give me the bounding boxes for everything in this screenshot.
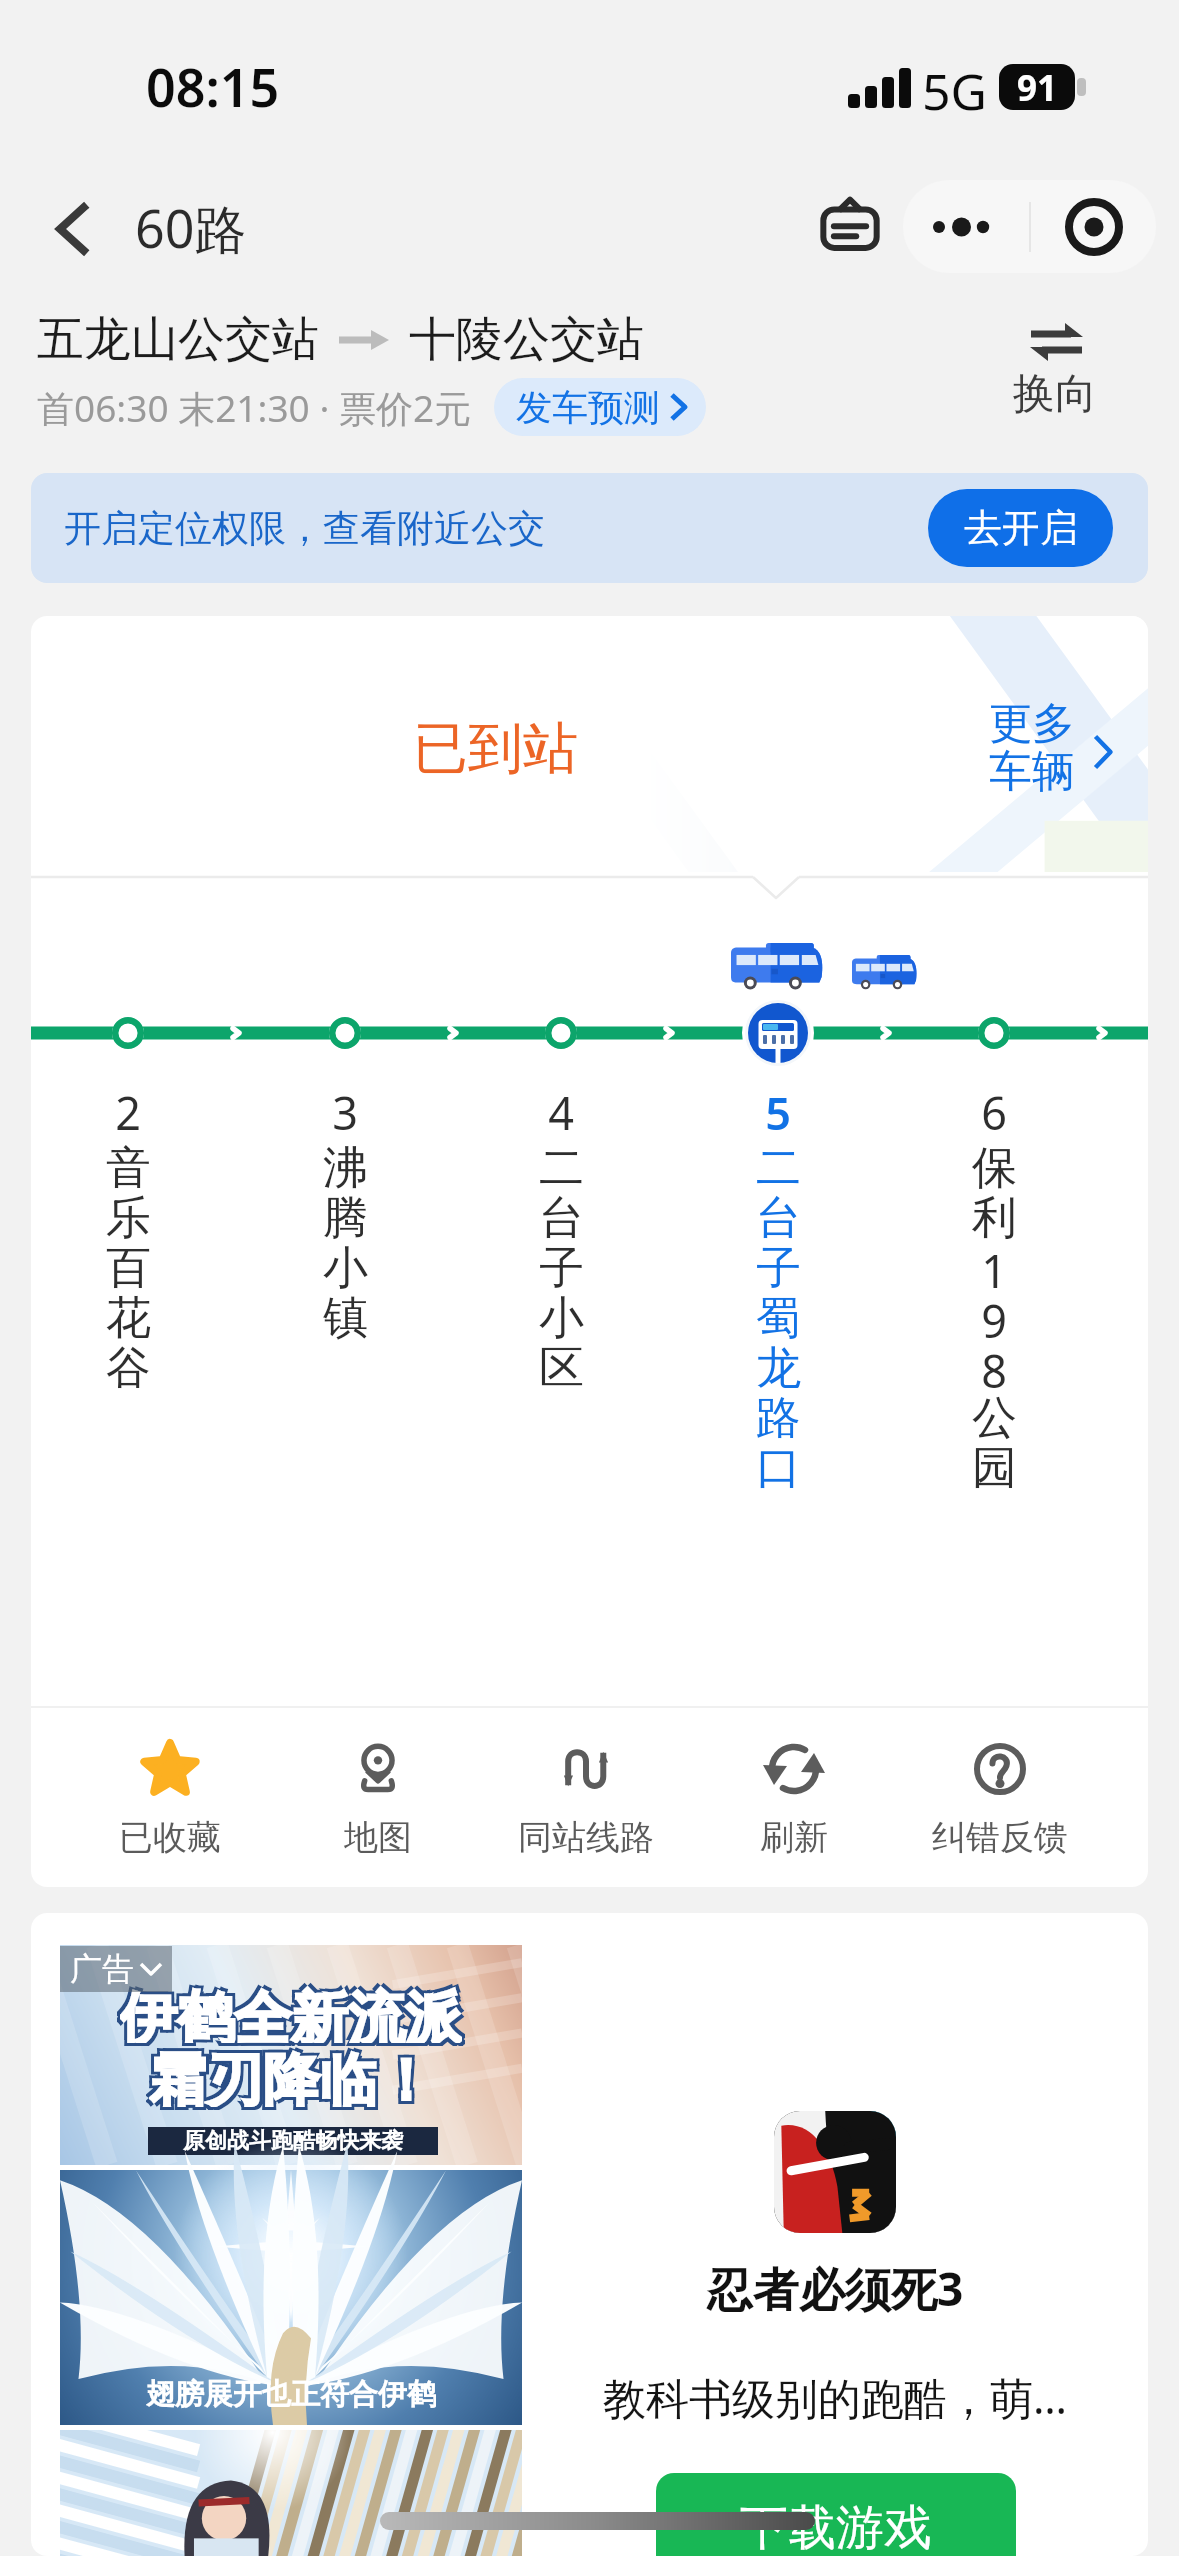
staticText: 8 <box>981 1340 1007 1390</box>
staticText: 已到站 <box>413 714 578 783</box>
staticText: 发车预测 <box>516 385 660 430</box>
button[interactable]: 换向 <box>1000 310 1110 430</box>
staticText: 刷新 <box>760 1816 828 1859</box>
staticText: 音 <box>106 1140 151 1190</box>
staticText: 龙 <box>756 1340 801 1390</box>
staticText: 腾 <box>323 1190 368 1240</box>
staticText: 子 <box>539 1240 584 1290</box>
staticText: 小 <box>323 1240 368 1290</box>
staticText: 沸 <box>323 1140 368 1190</box>
staticText: 伊鹤全新流派 <box>117 1980 459 2040</box>
staticText: 口 <box>756 1440 801 1490</box>
staticText: 91 <box>1017 64 1058 110</box>
staticText: 5 <box>765 1082 791 1130</box>
staticText: 60路 <box>135 192 247 263</box>
staticText: 花 <box>106 1290 151 1340</box>
staticText: 二 <box>756 1140 801 1190</box>
button[interactable]: Ticket <box>813 188 887 262</box>
button[interactable]: 4 <box>521 1082 601 1722</box>
staticText: 二 <box>539 1140 584 1190</box>
staticText: 十陵公交站 <box>409 310 644 369</box>
staticText: 伊鹤全新流派 <box>117 1986 459 2046</box>
staticText: 百 <box>106 1240 151 1290</box>
button[interactable]: Close <box>1031 180 1156 273</box>
staticText: 1 <box>981 1240 1007 1290</box>
staticText: 小 <box>539 1290 584 1340</box>
staticText: 霜刃降临！ <box>152 2048 437 2110</box>
staticText: 园 <box>972 1440 1017 1490</box>
staticText: 霜刃降临！ <box>152 2042 437 2104</box>
staticText: 同站线路 <box>518 1816 654 1859</box>
button[interactable]: 2 <box>88 1082 168 1722</box>
staticText: 霜刃降临！ <box>146 2042 431 2104</box>
button[interactable]: Advertisement <box>60 1946 172 1992</box>
staticText: 子 <box>756 1240 801 1290</box>
staticText: 镇 <box>323 1290 368 1340</box>
staticText: 地图 <box>344 1816 412 1859</box>
staticText: 更多 <box>989 697 1075 745</box>
staticText: 9 <box>981 1290 1007 1340</box>
staticText: 纠错反馈 <box>932 1816 1068 1859</box>
button[interactable]: 发车预测 <box>494 378 706 436</box>
staticText: 蜀 <box>756 1290 801 1340</box>
button[interactable]: Back <box>30 186 116 272</box>
button[interactable]: 刷新 <box>694 1734 894 1869</box>
button[interactable]: 3 <box>305 1082 385 1722</box>
button[interactable]: 更多 <box>987 697 1127 807</box>
staticText: 区 <box>539 1340 584 1390</box>
staticText: 换向 <box>1013 368 1097 420</box>
staticText: 公 <box>972 1390 1017 1440</box>
staticText: 08:15 <box>146 51 280 122</box>
staticText: 谷 <box>106 1340 151 1390</box>
staticText: 原创战斗跑酷畅快来袭 <box>183 2127 403 2155</box>
staticText: 路 <box>756 1390 801 1440</box>
staticText: 霜刃降临！ <box>149 2045 434 2107</box>
staticText: 翅膀展开也正符合伊鹤 <box>146 2376 436 2410</box>
staticText: 去开启 <box>964 504 1078 552</box>
button[interactable]: 去开启 <box>928 489 1113 567</box>
staticText: 2 <box>115 1082 141 1130</box>
staticText: 利 <box>972 1190 1017 1240</box>
staticText: 忍者必须死3 <box>707 2257 964 2320</box>
staticText: 伊鹤全新流派 <box>123 1980 465 2040</box>
button[interactable]: 已收藏 <box>70 1734 270 1869</box>
button[interactable]: 下载游戏 <box>656 2473 1016 2556</box>
staticText: 五龙山公交站 <box>37 310 319 369</box>
staticText: 车辆 <box>989 745 1075 793</box>
button[interactable]: More <box>903 180 1029 273</box>
button[interactable]: 6 <box>954 1082 1034 1722</box>
staticText: 霜刃降临！ <box>146 2048 431 2110</box>
staticText: 5G <box>922 57 987 125</box>
staticText: 乐 <box>106 1190 151 1240</box>
staticText: 已收藏 <box>119 1816 221 1859</box>
staticText: 伊鹤全新流派 <box>123 1986 465 2046</box>
button[interactable]: 同站线路 <box>486 1734 686 1869</box>
staticText: 台 <box>756 1190 801 1240</box>
staticText: 4 <box>548 1082 574 1130</box>
button[interactable]: 地图 <box>278 1734 478 1869</box>
staticText: 伊鹤全新流派 <box>120 1983 462 2043</box>
button[interactable]: App icon <box>774 2111 896 2233</box>
staticText: 开启定位权限，查看附近公交 <box>64 505 545 552</box>
staticText: 3 <box>332 1082 358 1130</box>
staticText: 首06:30 末21:30 · 票价2元 <box>37 382 472 433</box>
staticText: 保 <box>972 1140 1017 1190</box>
staticText: 6 <box>981 1082 1007 1130</box>
staticText: 教科书级别的跑酷，萌… <box>603 2368 1068 2427</box>
staticText: 广告 <box>70 1949 134 1989</box>
button[interactable]: 纠错反馈 <box>900 1734 1100 1869</box>
staticText: 下载游戏 <box>740 2498 932 2556</box>
staticText: 台 <box>539 1190 584 1240</box>
button[interactable]: 5 <box>738 1082 818 1722</box>
